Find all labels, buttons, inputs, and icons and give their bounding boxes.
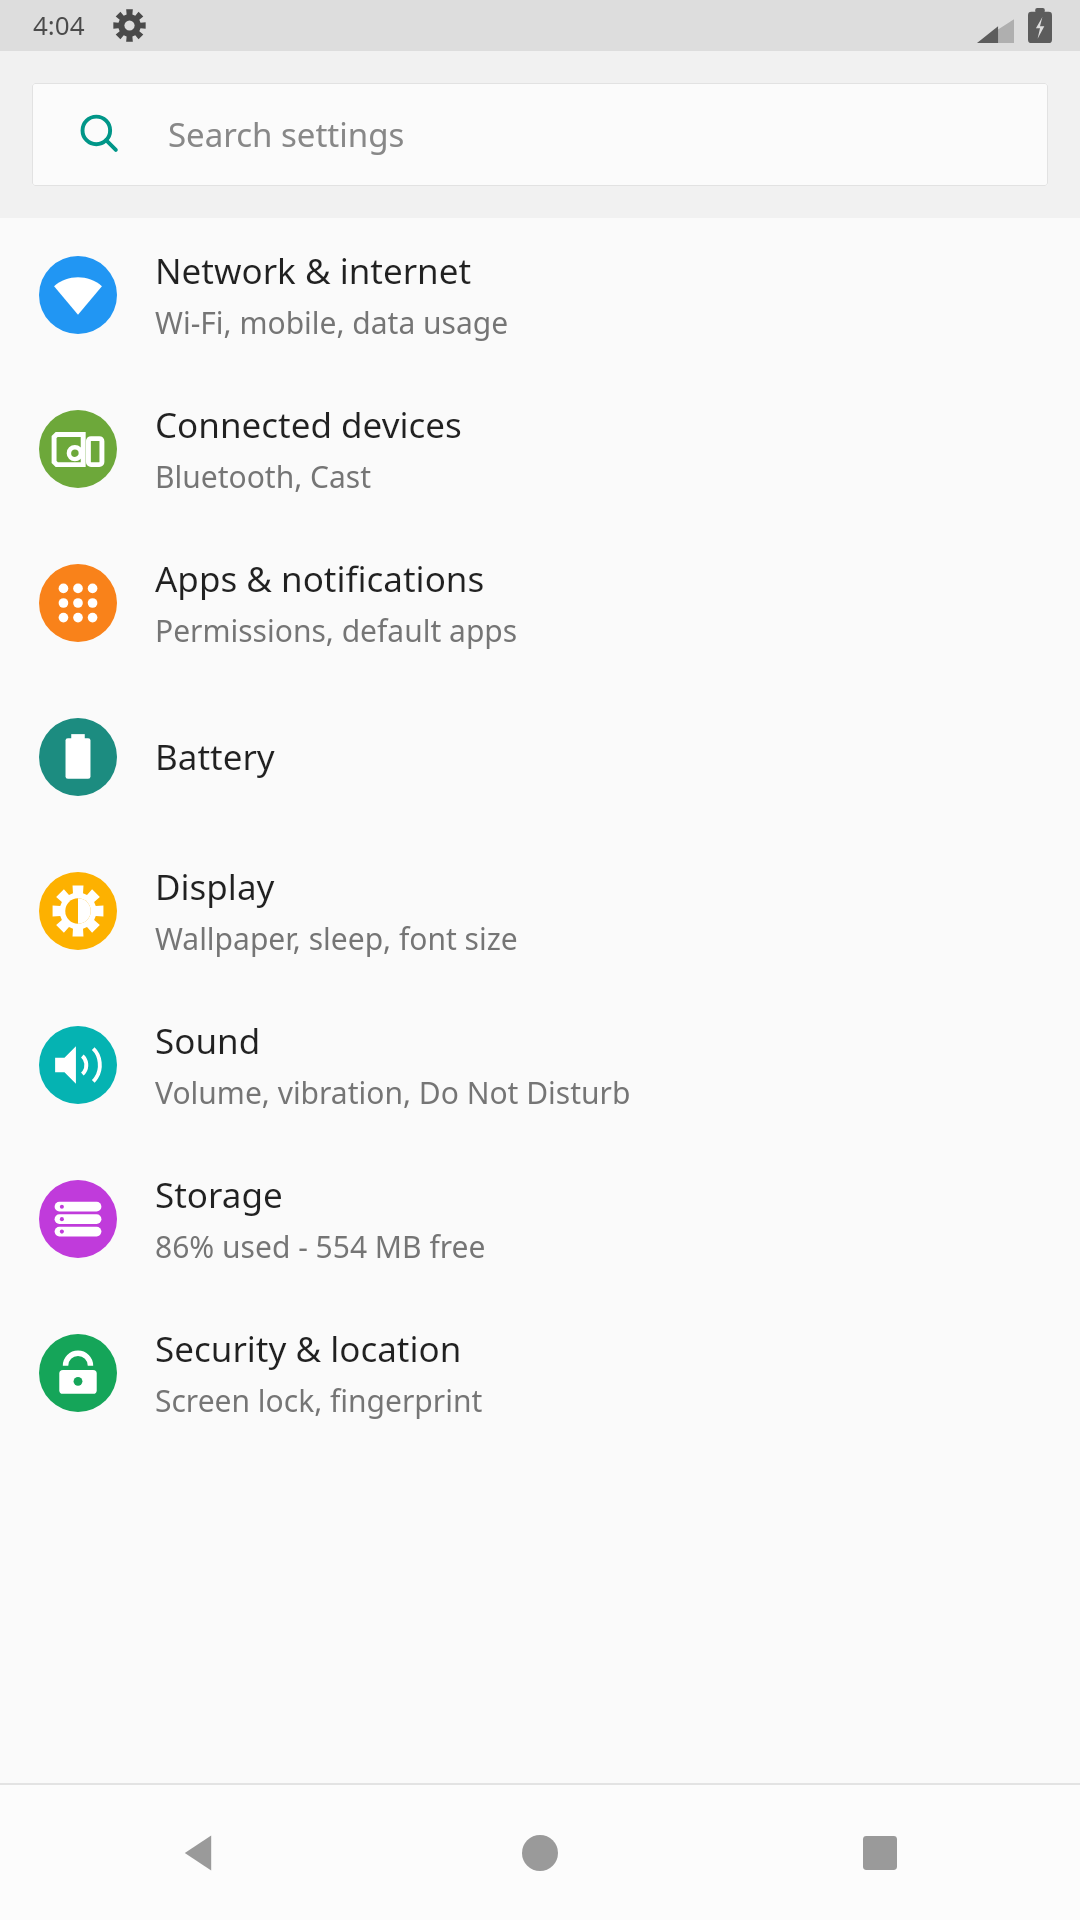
button[interactable]: Recent apps (820, 1793, 940, 1913)
staticText: Network & internet (155, 247, 472, 295)
staticText: Wallpaper, sleep, font size (155, 918, 518, 959)
staticText: Storage (155, 1171, 283, 1219)
staticText: Sound (155, 1017, 261, 1065)
button[interactable]: Network & internet (0, 218, 1080, 372)
staticText: Security & location (155, 1325, 462, 1373)
button[interactable]: Connected devices (0, 372, 1080, 526)
staticText: Permissions, default apps (155, 610, 518, 651)
staticText: Bluetooth, Cast (155, 456, 372, 497)
button[interactable]: Back (140, 1793, 260, 1913)
button[interactable]: Storage (0, 1142, 1080, 1296)
staticText: Screen lock, fingerprint (155, 1380, 483, 1421)
button[interactable]: Search settings (32, 83, 1048, 186)
staticText: Connected devices (155, 401, 462, 449)
staticText: Volume, vibration, Do Not Disturb (155, 1072, 631, 1113)
button[interactable]: Security & location (0, 1296, 1080, 1450)
staticText: 86% used - 554 MB free (155, 1226, 486, 1267)
button[interactable]: Display (0, 834, 1080, 988)
button[interactable]: Battery (0, 680, 1080, 834)
staticText: Display (155, 863, 275, 911)
staticText: Wi-Fi, mobile, data usage (155, 302, 509, 343)
staticText: Apps & notifications (155, 555, 485, 603)
button[interactable]: Sound (0, 988, 1080, 1142)
button[interactable]: Home (480, 1793, 600, 1913)
staticText: Search settings (168, 112, 405, 157)
button[interactable]: Apps & notifications (0, 526, 1080, 680)
staticText: Battery (155, 733, 275, 781)
staticText: 4:04 (33, 7, 85, 42)
